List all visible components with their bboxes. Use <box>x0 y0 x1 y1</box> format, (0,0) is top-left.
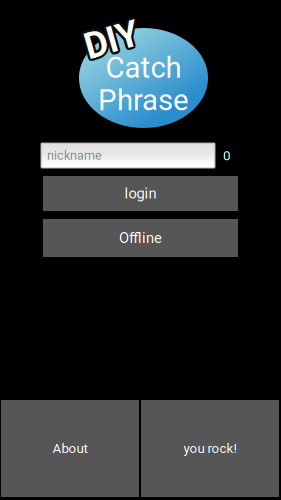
staticText: DIY <box>86 21 141 63</box>
staticText: Phrase <box>98 83 189 117</box>
staticText: About <box>52 441 87 456</box>
button[interactable]: Offline <box>43 219 238 257</box>
staticText: Catch <box>105 51 181 85</box>
staticText: DIY <box>82 17 137 59</box>
staticText: DIY <box>82 19 137 61</box>
staticText: DIY <box>86 19 141 61</box>
staticText: you rock! <box>183 441 236 456</box>
staticText: DIY <box>86 17 141 59</box>
staticText: 0 <box>223 148 230 164</box>
button[interactable]: About <box>1 400 139 497</box>
button[interactable]: login <box>43 176 238 211</box>
staticText: nickname <box>47 148 102 163</box>
staticText: DIY <box>82 21 137 63</box>
staticText: login <box>124 185 156 202</box>
staticText: DIY <box>84 19 139 61</box>
button[interactable]: you rock! <box>141 400 279 497</box>
staticText: DIY <box>84 16 139 59</box>
staticText: DIY <box>84 21 139 63</box>
staticText: Offline <box>119 229 162 247</box>
